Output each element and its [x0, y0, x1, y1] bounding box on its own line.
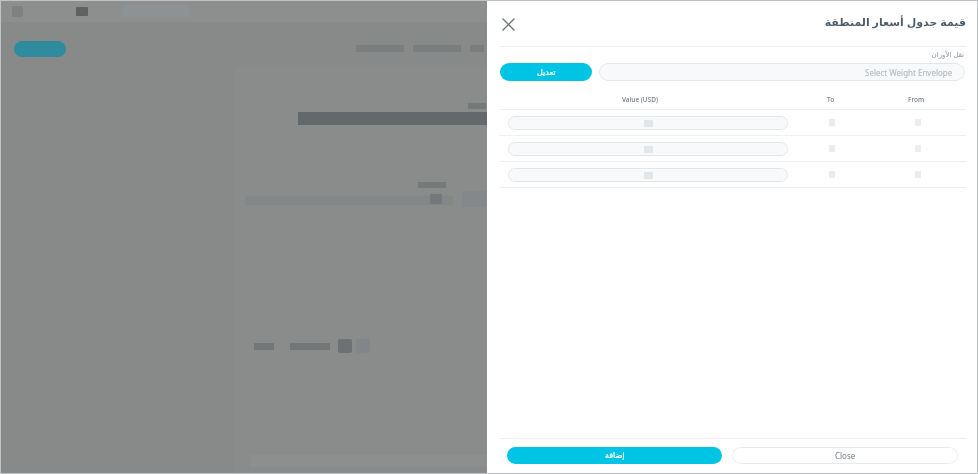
- button[interactable]: Select Weight Envelope: [599, 63, 965, 81]
- staticText: إضافة: [605, 451, 625, 460]
- staticText: تعديل: [537, 68, 556, 77]
- staticText: To: [827, 95, 835, 104]
- button[interactable]: Close dialog: [498, 14, 518, 34]
- button[interactable]: [487, 162, 978, 187]
- staticText: نقل الأوزان: [487, 50, 964, 60]
- button[interactable]: [487, 136, 978, 161]
- button[interactable]: إضافة: [507, 447, 722, 464]
- button[interactable]: Close: [732, 447, 958, 464]
- staticText: Value (USD): [622, 95, 659, 104]
- button[interactable]: تعديل: [500, 63, 592, 81]
- staticText: قيمة جدول أسعار المنطقة: [824, 14, 966, 29]
- staticText: Select Weight Envelope: [865, 67, 953, 78]
- staticText: Close: [835, 450, 856, 461]
- button[interactable]: [487, 110, 978, 135]
- staticText: From: [908, 95, 925, 104]
